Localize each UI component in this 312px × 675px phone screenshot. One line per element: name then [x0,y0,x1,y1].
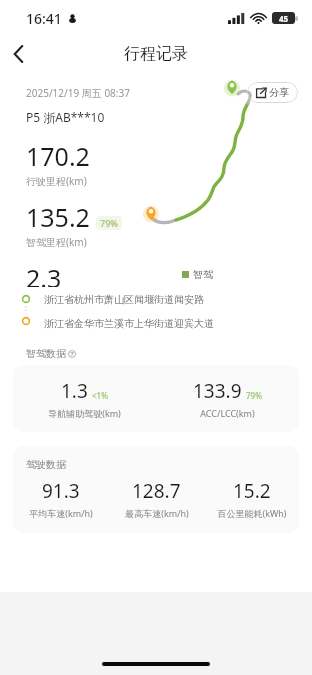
staticText: 15.2 [233,478,271,504]
staticText: 浙江省金华市兰溪市上华街道迎宾大道 [44,317,214,330]
staticText: 智驾 [193,268,213,281]
button[interactable]: 驾驶数据 [13,446,299,533]
staticText: 135.2 [26,200,90,234]
button[interactable]: 返回 [0,36,36,72]
staticText: 平均车速(km/h) [29,507,93,519]
staticText: 驾驶数据 [26,458,66,471]
staticText: 浙江省杭州市萧山区闻堰街道闻安路 [44,293,204,306]
staticText: 智驾里程(km) [26,235,87,249]
staticText: 45 [279,13,289,24]
staticText: 79% [100,217,118,229]
staticText: <1% [92,390,108,401]
staticText: 智驾数据 [26,347,66,360]
staticText: 128.7 [132,478,181,504]
staticText: 91.3 [42,478,80,504]
staticText: 170.2 [26,139,90,173]
staticText: 79% [246,390,262,401]
staticText: 1.3 [61,378,88,404]
staticText: 16:41 [26,9,62,28]
staticText: 分享 [269,86,289,99]
button[interactable]: 1.3 [13,365,299,432]
staticText: 导航辅助驾驶(km) [48,407,121,419]
staticText: 行程记录 [124,44,188,64]
staticText: 行驶里程(km) [26,174,87,188]
staticText: P5 浙AB***10 [26,109,105,125]
staticText: 2025/12/19 周五 08:37 [26,86,130,100]
staticText: 2.3 [26,261,62,287]
staticText: 133.9 [193,378,242,404]
button[interactable]: 分享 [247,82,298,103]
staticText: ACC/LCC(km) [200,407,255,419]
staticText: 百公里能耗(kWh) [217,507,287,519]
staticText: 最高车速(km/h) [125,507,189,519]
